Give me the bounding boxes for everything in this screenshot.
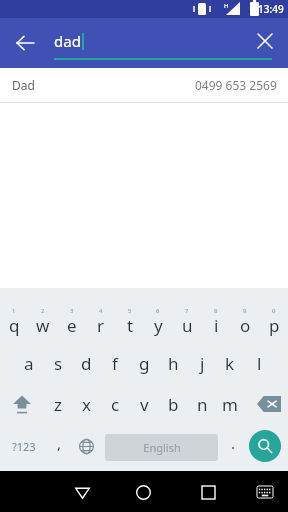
staticText: j [200, 352, 205, 375]
staticText: 2 [41, 307, 45, 315]
staticText: d [81, 352, 92, 375]
button[interactable]: English [105, 434, 218, 461]
staticText: f [112, 352, 118, 375]
button[interactable]: h [159, 345, 187, 381]
button[interactable]: Shift [4, 386, 40, 422]
button[interactable]: Home [123, 472, 163, 512]
button[interactable]: Backspace [251, 386, 287, 422]
staticText: a [24, 352, 34, 375]
staticText: b [168, 393, 179, 416]
button[interactable]: k [216, 345, 244, 381]
staticText: i [214, 314, 219, 337]
staticText: 0499 653 2569 [195, 77, 277, 93]
staticText: . [231, 433, 236, 453]
button[interactable]: g [130, 345, 158, 381]
staticText: v [140, 393, 149, 416]
staticText: , [57, 433, 62, 453]
staticText: 5 [128, 307, 132, 315]
button[interactable]: 3 [58, 304, 86, 340]
button[interactable]: x [72, 386, 100, 422]
staticText: p [269, 314, 280, 337]
staticText: y [154, 314, 163, 337]
staticText: g [139, 352, 150, 375]
staticText: q [9, 314, 20, 337]
staticText: 7 [185, 307, 189, 315]
staticText: w [36, 314, 50, 337]
button[interactable]: 5 [116, 304, 144, 340]
staticText: 8 [214, 307, 218, 315]
staticText: 1 [12, 307, 16, 315]
staticText: t [127, 314, 134, 337]
button[interactable]: a [15, 345, 43, 381]
button[interactable]: 0 [260, 304, 288, 340]
button[interactable]: c [101, 386, 129, 422]
button[interactable]: Back [6, 24, 44, 62]
button[interactable]: j [188, 345, 216, 381]
button[interactable]: 4 [87, 304, 115, 340]
button[interactable]: Search [249, 430, 281, 462]
staticText: n [197, 393, 208, 416]
staticText: e [67, 314, 77, 337]
button[interactable]: 8 [202, 304, 230, 340]
staticText: 13:49 [258, 2, 284, 16]
button[interactable]: s [44, 345, 72, 381]
staticText: H [224, 2, 229, 10]
button[interactable]: m [216, 386, 244, 422]
button[interactable]: 7 [173, 304, 201, 340]
staticText: Dad [12, 77, 35, 93]
button[interactable]: d [72, 345, 100, 381]
staticText: x [82, 393, 91, 416]
button[interactable]: , [48, 429, 70, 463]
staticText: l [257, 352, 262, 375]
staticText: z [54, 393, 62, 416]
staticText: English [143, 440, 181, 455]
staticText: 9 [243, 307, 247, 315]
button[interactable]: Clear search [246, 22, 284, 60]
button[interactable]: f [101, 345, 129, 381]
button[interactable]: Back [62, 472, 102, 512]
staticText: r [97, 314, 105, 337]
button[interactable]: z [44, 386, 72, 422]
button[interactable]: v [130, 386, 158, 422]
button[interactable]: ?123 [2, 429, 46, 463]
button[interactable]: Switch keyboard [250, 477, 280, 507]
staticText: c [111, 393, 120, 416]
staticText: s [54, 352, 63, 375]
staticText: m [222, 393, 238, 416]
button[interactable]: n [188, 386, 216, 422]
staticText: 6 [156, 307, 160, 315]
button[interactable]: b [159, 386, 187, 422]
button[interactable]: Dad [0, 68, 288, 102]
button[interactable]: 9 [231, 304, 259, 340]
staticText: h [168, 352, 179, 375]
button[interactable]: l [245, 345, 273, 381]
button[interactable]: 1 [0, 304, 28, 340]
button[interactable]: 6 [144, 304, 172, 340]
button[interactable]: 2 [29, 304, 57, 340]
button[interactable]: Recent apps [188, 472, 228, 512]
staticText: o [240, 314, 251, 337]
button[interactable]: Change language [72, 429, 100, 463]
staticText: u [182, 314, 193, 337]
staticText: k [225, 352, 235, 375]
staticText: 0 [272, 307, 276, 315]
staticText: 4 [99, 307, 103, 315]
staticText: 3 [70, 307, 74, 315]
staticText: ?123 [12, 439, 36, 454]
staticText: dad [54, 31, 81, 51]
button[interactable]: . [222, 429, 244, 463]
